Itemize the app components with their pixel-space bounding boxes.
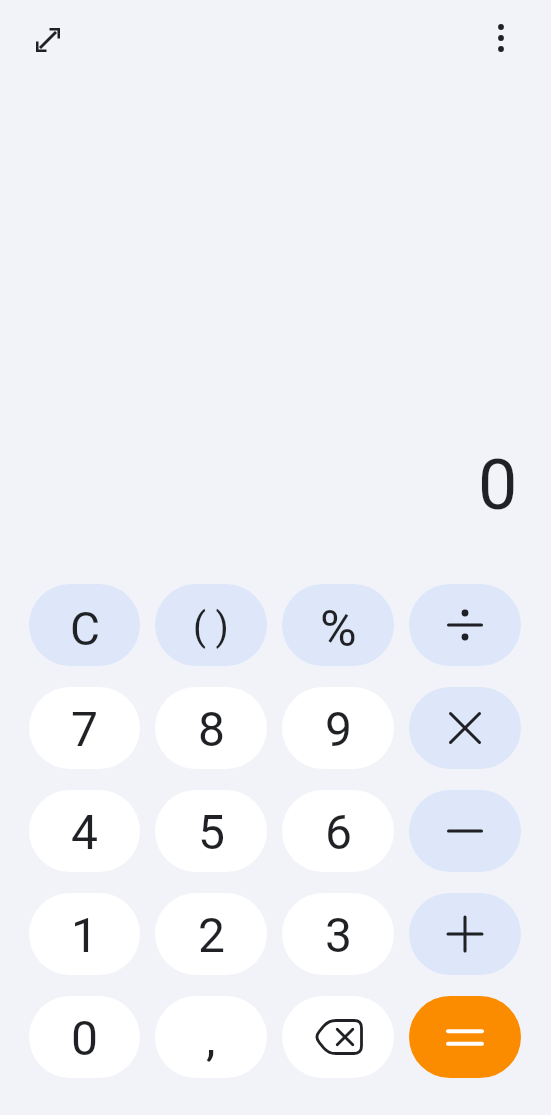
button[interactable]: , bbox=[155, 996, 267, 1078]
button[interactable]: 1 bbox=[29, 893, 140, 975]
button[interactable]: C bbox=[29, 584, 140, 666]
button[interactable]: 6 bbox=[282, 790, 394, 872]
button[interactable] bbox=[409, 584, 521, 666]
staticText: 9 bbox=[325, 701, 352, 757]
staticText: 3 bbox=[325, 907, 352, 963]
button[interactable]: % bbox=[282, 584, 394, 666]
staticText: , bbox=[206, 1010, 216, 1066]
staticText: 1 bbox=[71, 907, 98, 963]
staticText: 7 bbox=[71, 701, 98, 757]
button[interactable] bbox=[477, 14, 525, 62]
staticText: C bbox=[70, 602, 100, 656]
button[interactable] bbox=[409, 996, 521, 1078]
button[interactable]: 0 bbox=[29, 996, 140, 1078]
staticText: 6 bbox=[325, 804, 352, 860]
button[interactable]: 4 bbox=[29, 790, 140, 872]
button[interactable] bbox=[282, 996, 394, 1078]
staticText: 0 bbox=[478, 444, 518, 526]
staticText: 5 bbox=[198, 804, 225, 860]
button[interactable] bbox=[409, 893, 521, 975]
button[interactable]: 2 bbox=[155, 893, 267, 975]
button[interactable]: 7 bbox=[29, 687, 140, 769]
button[interactable]: 3 bbox=[282, 893, 394, 975]
staticText: ( ) bbox=[193, 605, 229, 650]
button[interactable] bbox=[409, 687, 521, 769]
staticText: 2 bbox=[198, 907, 225, 963]
button[interactable]: 9 bbox=[282, 687, 394, 769]
button[interactable] bbox=[24, 16, 72, 64]
button[interactable] bbox=[409, 790, 521, 872]
staticText: 8 bbox=[198, 701, 225, 757]
button[interactable]: ( ) bbox=[155, 584, 267, 666]
staticText: % bbox=[320, 600, 357, 659]
button[interactable]: 5 bbox=[155, 790, 267, 872]
staticText: 4 bbox=[71, 804, 98, 860]
staticText: 0 bbox=[71, 1010, 98, 1066]
button[interactable]: 8 bbox=[155, 687, 267, 769]
